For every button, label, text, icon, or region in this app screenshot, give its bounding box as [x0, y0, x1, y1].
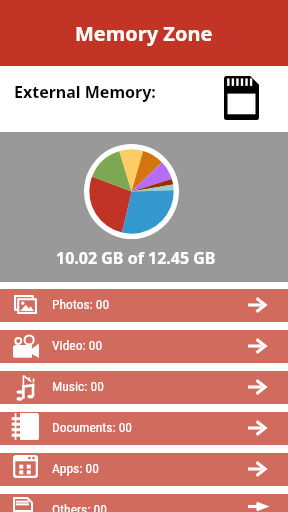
button[interactable]: Memory Zone: [0, 0, 288, 66]
staticText: Photos: 00: [52, 296, 110, 312]
button[interactable]: Others: 00: [0, 494, 288, 512]
other: SD card: [224, 76, 259, 120]
staticText: 10.02 GB of 12.45 GB: [56, 247, 216, 269]
staticText: Memory Zone: [75, 20, 213, 47]
staticText: Music: 00: [52, 378, 104, 394]
button[interactable]: Documents: 00: [0, 412, 288, 445]
staticText: Documents: 00: [52, 419, 133, 435]
button[interactable]: Photos: 00: [0, 289, 288, 322]
button[interactable]: Video: 00: [0, 330, 288, 363]
button[interactable]: Apps: 00: [0, 453, 288, 486]
button[interactable]: Music: 00: [0, 371, 288, 404]
staticText: Others: 00: [52, 501, 107, 512]
staticText: Apps: 00: [52, 460, 99, 476]
staticText: External Memory:: [14, 81, 156, 103]
staticText: Video: 00: [52, 337, 103, 353]
